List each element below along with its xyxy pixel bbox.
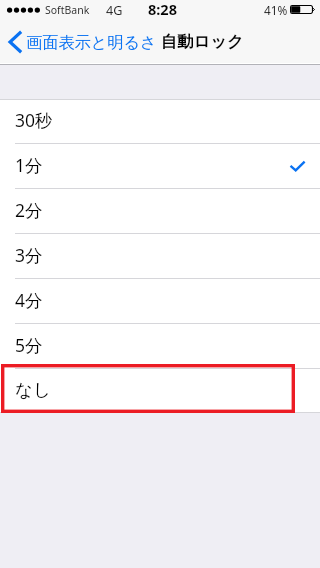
staticText: 2分: [15, 198, 43, 222]
staticText: SoftBank: [45, 3, 90, 17]
staticText: 30秒: [15, 108, 53, 132]
button[interactable]: 30秒: [0, 100, 320, 144]
staticText: 画面表示と明るさ: [26, 32, 157, 52]
button[interactable]: なし: [0, 369, 320, 414]
staticText: 4分: [15, 288, 43, 312]
staticText: なし: [15, 379, 51, 401]
staticText: 8:28: [148, 0, 177, 19]
button[interactable]: 5分: [0, 324, 320, 369]
staticText: 5分: [15, 333, 43, 357]
button[interactable]: 3分: [0, 234, 320, 279]
button[interactable]: 戻る 画面表示と明るさ: [0, 20, 163, 64]
button[interactable]: 4分: [0, 279, 320, 324]
button[interactable]: 1分: [0, 144, 320, 189]
staticText: 1分: [15, 153, 43, 177]
staticText: 41%: [264, 2, 288, 18]
staticText: 自動ロック: [161, 31, 244, 52]
button[interactable]: 2分: [0, 189, 320, 234]
staticText: 3分: [15, 243, 43, 267]
staticText: 4G: [106, 2, 123, 19]
